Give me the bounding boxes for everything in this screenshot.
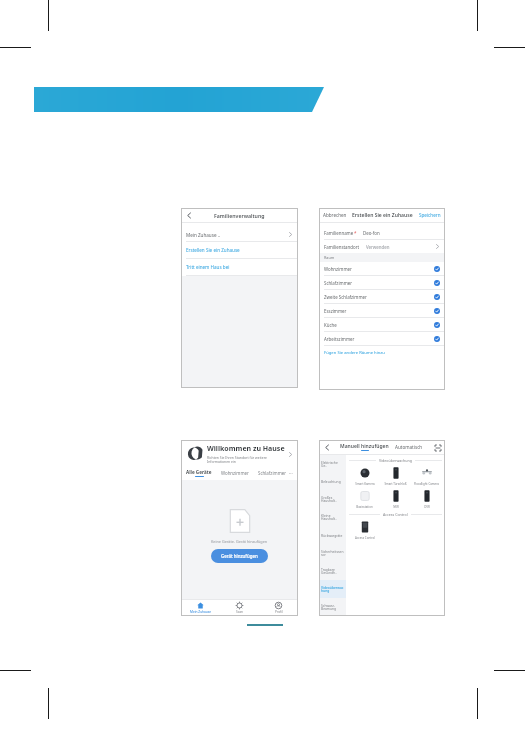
button[interactable]: DVR	[411, 488, 442, 509]
button[interactable]: Fügen Sie andere Räume hinzu	[319, 346, 445, 359]
staticText: *	[354, 230, 357, 236]
button[interactable]: Alle Geräte	[186, 469, 212, 477]
staticText: Erstellen Sie ein Zuhause	[186, 247, 240, 253]
staticText: Access Control	[383, 512, 408, 517]
staticText: Abbrechen	[323, 212, 347, 218]
staticText: Mein Zuhause ..	[186, 232, 221, 238]
staticText: Kleine Haushalt..	[321, 513, 344, 521]
button[interactable]: Zurück	[184, 210, 194, 220]
button[interactable]: Scannen	[433, 443, 442, 452]
button[interactable]: Elektrische Ge..	[319, 455, 346, 472]
button[interactable]: Esszimmer	[319, 304, 445, 317]
button[interactable]: Schlafzimmer	[319, 276, 445, 289]
button[interactable]: Smart Kamera	[349, 465, 380, 486]
button[interactable]: Profil	[259, 600, 298, 616]
staticText: Scan	[236, 610, 244, 614]
staticText: Schlafzimmer	[324, 280, 353, 286]
staticText: Erstellen Sie ein Zuhause	[352, 212, 413, 219]
staticText: Profil	[275, 610, 283, 614]
staticText: Küche	[324, 322, 337, 328]
button[interactable]: Scan	[220, 600, 259, 616]
staticText: Smart Türschloß	[384, 482, 407, 486]
staticText: Tritt einem Haus bei	[186, 264, 230, 270]
staticText: Familienname	[324, 230, 354, 236]
staticText: Videoüberwachung	[379, 458, 412, 463]
staticText: Großes Haushalt..	[321, 495, 344, 503]
button[interactable]: Floodlight Camera	[411, 465, 442, 486]
staticText: Wohnzimmer	[324, 266, 352, 272]
staticText: Manuell hinzufügen	[340, 443, 389, 450]
staticText: Deo-fon	[363, 230, 380, 236]
button[interactable]: Familienname	[319, 226, 445, 239]
staticText: Fügen Sie andere Räume hinzu	[324, 350, 385, 356]
staticText: Richten Sie Ihren Standort für weitere I…	[207, 455, 288, 464]
staticText: Smart Kamera	[355, 482, 375, 486]
button[interactable]: Sicherheitssensor	[319, 544, 346, 562]
staticText: Keine Geräte. Gerät hinzufügen	[211, 539, 268, 544]
button[interactable]: NVR	[380, 488, 411, 509]
button[interactable]: Wohnzimmer	[319, 262, 445, 275]
button[interactable]: Abbrechen	[323, 212, 347, 218]
button[interactable]: Kleine Haushalt..	[319, 508, 346, 526]
staticText: Gerät hinzufügen	[221, 553, 258, 559]
button[interactable]: Wohnzimmer	[221, 470, 249, 476]
staticText: Familienverwaltung	[214, 212, 265, 219]
button[interactable]: Großes Haushalt..	[319, 490, 346, 508]
button[interactable]: Arbeitszimmer	[319, 332, 445, 345]
staticText: Access Control	[355, 536, 375, 540]
button[interactable]: Familienstandort	[319, 240, 445, 253]
staticText: Rückwargräte	[321, 533, 343, 537]
button[interactable]: Zurück	[322, 443, 331, 452]
staticText: Sicherheitssensor	[321, 549, 344, 557]
staticText: Basisstation	[356, 505, 373, 509]
button[interactable]: Beleuchtung	[319, 472, 346, 490]
button[interactable]: Tritt einem Haus bei	[181, 259, 298, 275]
staticText: Tragbare Gesundh..	[321, 567, 344, 575]
staticText: Floodlight Camera	[414, 482, 439, 486]
staticText: Beleuchtung	[321, 479, 341, 483]
button[interactable]: Zweite Schlafzimmer	[319, 290, 445, 303]
button[interactable]: Videoüberwachung	[319, 580, 346, 598]
staticText: Elektrische Ge..	[321, 460, 344, 468]
button[interactable]: Mein Zuhause ..	[181, 228, 298, 241]
staticText: Raum	[324, 255, 335, 260]
button[interactable]: Speichern	[419, 212, 441, 218]
staticText: Familienstandort	[324, 244, 360, 250]
button[interactable]: Basisstation	[349, 488, 380, 509]
staticText: Wohnzimmer	[221, 470, 249, 476]
button[interactable]: Schlafzimmer	[258, 470, 287, 476]
staticText: Speichern	[419, 212, 441, 218]
staticText: Alle Geräte	[186, 469, 212, 475]
staticText: NVR	[393, 505, 399, 509]
button[interactable]: Access Control	[349, 519, 380, 540]
button[interactable]: Automatisch	[395, 444, 423, 450]
button[interactable]: Rückwargräte	[319, 526, 346, 544]
staticText: Esszimmer	[324, 308, 347, 314]
staticText: Schwarz-Beamung	[321, 603, 344, 611]
staticText: Willkommen zu Hause	[207, 444, 285, 454]
button[interactable]: Mehr	[289, 470, 293, 476]
staticText: Automatisch	[395, 444, 423, 450]
button[interactable]: Mein Zuhause	[181, 600, 220, 616]
button[interactable]: Gerät hinzufügen	[211, 549, 268, 563]
button[interactable]: Erstellen Sie ein Zuhause	[181, 242, 298, 258]
button[interactable]: Schwarz-Beamung	[319, 598, 346, 616]
staticText: Verwenden	[366, 244, 390, 250]
button[interactable]: Küche	[319, 318, 445, 331]
button[interactable]: Tragbare Gesundh..	[319, 562, 346, 580]
staticText: Arbeitszimmer	[324, 336, 355, 342]
button[interactable]: Smart Türschloß	[380, 465, 411, 486]
button[interactable]: Willkommen zu Hause	[186, 444, 293, 464]
staticText: Mein Zuhause	[190, 610, 212, 614]
staticText: Videoüberwachung	[321, 585, 344, 593]
staticText: Zweite Schlafzimmer	[324, 294, 367, 300]
staticText: ···	[289, 470, 293, 476]
staticText: Schlafzimmer	[258, 470, 287, 476]
staticText: DVR	[424, 505, 430, 509]
